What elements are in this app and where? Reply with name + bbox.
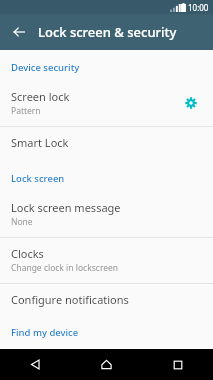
button[interactable]: Back (0, 14, 38, 50)
button[interactable]: Screen lock settings (179, 91, 203, 115)
staticText: None (11, 216, 33, 228)
staticText: Configure notifications (11, 292, 129, 307)
staticText: Pattern (11, 105, 41, 117)
button[interactable]: Smart Lock (0, 127, 213, 159)
button[interactable]: Screen lock (0, 81, 213, 126)
staticText: Screen lock (11, 89, 70, 104)
staticText: Clocks (11, 246, 44, 261)
staticText: 10:00 (188, 2, 209, 13)
staticText: Device security (11, 61, 80, 74)
button[interactable]: Recents (142, 349, 213, 380)
staticText: Lock screen & security (38, 23, 177, 41)
staticText: Lock screen message (11, 200, 121, 215)
staticText: Smart Lock (11, 135, 69, 150)
button[interactable]: Clocks (0, 238, 213, 283)
staticText: Find my device (11, 326, 79, 339)
button[interactable]: Lock screen message (0, 192, 213, 237)
button[interactable]: Home (71, 349, 142, 380)
staticText: Change clock in lockscreen (11, 262, 119, 274)
button[interactable]: Configure notifications (0, 284, 213, 316)
staticText: Lock screen (11, 172, 65, 185)
button[interactable]: Back (0, 349, 71, 380)
